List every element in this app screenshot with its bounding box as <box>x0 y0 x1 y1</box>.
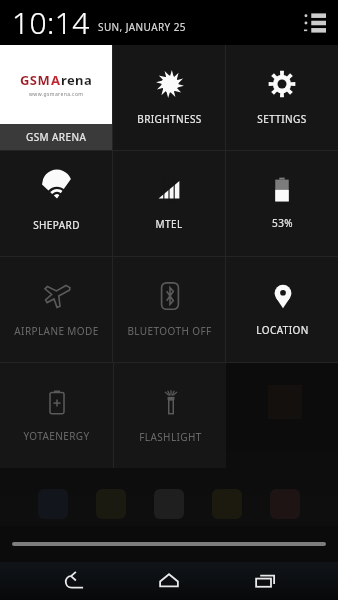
staticText: SHEPARD <box>33 218 80 232</box>
staticText: YOTAENERGY <box>23 429 90 443</box>
button[interactable]: FLASHLIGHT <box>114 363 226 468</box>
button[interactable]: SETTINGS <box>226 45 338 150</box>
button[interactable]: Notifications <box>302 10 328 36</box>
staticText: LOCATION <box>256 323 309 337</box>
staticText: FLASHLIGHT <box>139 430 202 444</box>
button[interactable]: YOTAENERGY <box>0 363 113 468</box>
staticText: 53% <box>272 216 293 230</box>
button[interactable]: Home <box>146 564 192 598</box>
button[interactable]: BLUETOOTH OFF <box>113 257 225 362</box>
button[interactable]: Back <box>50 564 96 598</box>
button[interactable]: MTEL <box>113 151 225 256</box>
button[interactable]: LOCATION <box>226 257 338 362</box>
staticText: BLUETOOTH OFF <box>127 324 212 338</box>
staticText: GSM <box>20 71 51 89</box>
staticText: MTEL <box>155 217 183 231</box>
staticText: www.gsmarena.com <box>29 91 84 98</box>
staticText: AIRPLANE MODE <box>14 324 99 338</box>
staticText: SETTINGS <box>257 112 307 126</box>
button[interactable]: GSM <box>0 45 112 150</box>
button[interactable]: Recent apps <box>242 564 288 598</box>
button[interactable]: AIRPLANE MODE <box>0 257 112 362</box>
button[interactable]: BRIGHTNESS <box>113 45 225 150</box>
staticText: A <box>51 71 61 89</box>
staticText: SUN, JANUARY 25 <box>98 20 186 34</box>
staticText: 10:14 <box>12 2 90 43</box>
staticText: GSM ARENA <box>26 130 87 144</box>
staticText: BRIGHTNESS <box>137 112 202 126</box>
button[interactable] <box>0 526 338 562</box>
button[interactable]: SHEPARD <box>0 151 112 256</box>
staticText: rena <box>61 71 93 89</box>
button[interactable]: 53% <box>226 151 338 256</box>
